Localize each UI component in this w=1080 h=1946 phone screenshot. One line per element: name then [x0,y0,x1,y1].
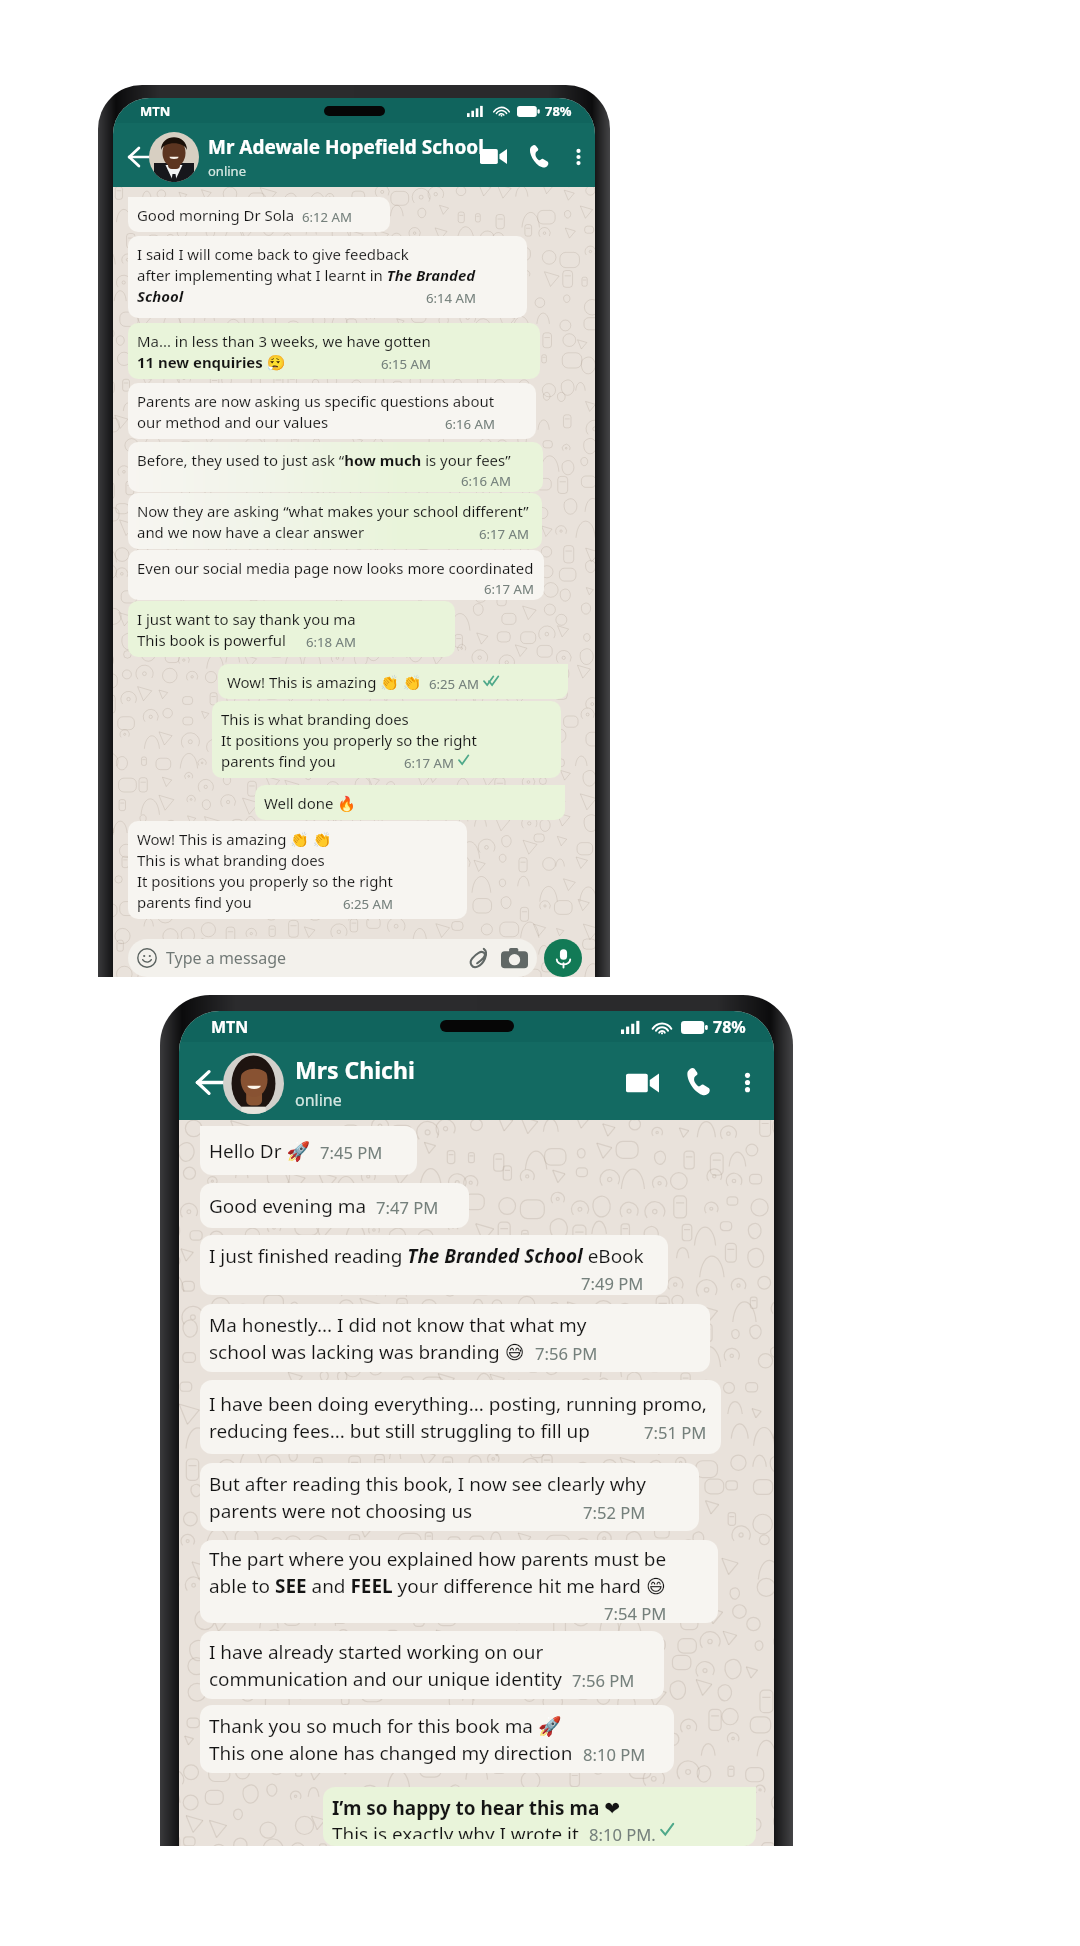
staticText: 7:56 PM [535,1342,598,1365]
staticText: 7:47 PM [376,1196,439,1219]
button[interactable]: Voice call [685,1068,713,1097]
staticText: This is what branding does [221,709,409,729]
button[interactable]: More options [572,148,585,166]
button[interactable]: Ma honestly... I did not know that what … [200,1304,710,1372]
staticText: I have already started working on our [209,1639,544,1665]
staticText: reducing fees... but still struggling to… [209,1418,590,1444]
staticText: 6:14 AM [426,289,476,307]
other: Camera [501,947,528,970]
staticText: Mr Adewale Hopefield School [208,134,484,160]
button[interactable]: Video call [480,147,507,166]
button[interactable]: I have been doing everything... posting,… [200,1380,721,1454]
staticText: communication and our unique identity [209,1666,562,1692]
staticText: It positions you properly so the right [137,871,393,891]
staticText: I said I will come back to give feedback [137,244,409,264]
staticText: parents find you [137,892,252,912]
staticText: School [137,286,184,306]
button[interactable]: Well done 🔥 [255,785,565,820]
staticText: Wow! This is amazing 👏 👏 [227,672,422,692]
staticText: school was lacking was branding 😅 [209,1339,525,1365]
staticText: and we now have a clear answer [137,522,365,542]
staticText: It positions you properly so the right [221,730,477,750]
button[interactable]: I’m so happy to hear this ma ❤️ [323,1787,756,1846]
button[interactable]: Type a message [128,939,537,977]
staticText: 7:56 PM [572,1669,635,1692]
staticText: Ma... in less than 3 weeks, we have gott… [137,331,431,351]
staticText: 78% [545,102,572,120]
staticText: This book is powerful [137,630,286,650]
staticText: 6:15 AM [381,355,431,373]
staticText: able to SEE and FEEL your difference hit… [209,1573,666,1599]
staticText: 6:17 AM [484,580,534,595]
staticText: Now they are asking “what makes your sch… [137,501,529,521]
staticText: Even our social media page now looks mor… [137,558,534,578]
staticText: 11 new enquiries 😮‍💨 [137,352,286,372]
staticText: 6:16 AM [461,472,511,487]
staticText: 7:52 PM [583,1501,646,1524]
button[interactable]: This is what branding does [212,701,561,778]
button[interactable]: Ma... in less than 3 weeks, we have gott… [128,323,540,379]
staticText: 6:12 AM [302,208,352,226]
button[interactable]: I just finished reading The Branded Scho… [200,1235,668,1295]
staticText: 7:54 PM [604,1602,667,1621]
staticText: Mrs Chichi [295,1054,415,1085]
staticText: I have been doing everything... posting,… [209,1391,707,1417]
button[interactable]: Even our social media page now looks mor… [128,550,544,600]
staticText: 6:25 AM [429,675,479,693]
staticText: Good morning Dr Sola [137,205,295,225]
staticText: 6:17 AM [479,525,529,543]
button[interactable]: Back [196,1067,227,1098]
staticText: Hello Dr 🚀 [209,1138,311,1164]
staticText: This one alone has changed my direction [209,1740,573,1766]
staticText: Type a message [166,947,287,969]
staticText: MTN [211,1016,249,1038]
button[interactable]: I just want to say thank you ma [128,601,455,657]
staticText: 6:18 AM [306,633,356,651]
staticText: Parents are now asking us specific quest… [137,391,495,411]
staticText: parents were not choosing us [209,1498,473,1524]
button[interactable]: Wow! This is amazing 👏 👏 [128,821,467,919]
staticText: But after reading this book, I now see c… [209,1471,646,1497]
staticText: after implementing what I learnt in The … [137,265,476,285]
button[interactable]: I said I will come back to give feedback [128,236,527,318]
staticText: Well done 🔥 [264,793,356,813]
staticText: 6:16 AM [445,415,495,433]
button[interactable]: But after reading this book, I now see c… [200,1463,699,1531]
button[interactable]: Voice call [528,145,551,169]
staticText: MTN [140,102,171,120]
staticText: online [208,162,246,180]
button[interactable]: Back [128,144,154,170]
button[interactable]: Thank you so much for this book ma 🚀 [200,1705,674,1773]
button[interactable]: I have already started working on our [200,1631,664,1699]
staticText: Wow! This is amazing 👏 👏 [137,829,332,849]
staticText: I just want to say thank you ma [137,609,356,629]
button[interactable]: Wow! This is amazing 👏 👏 [218,664,568,699]
staticText: our method and our values [137,412,329,432]
button[interactable]: Now they are asking “what makes your sch… [128,493,542,549]
button[interactable]: Before, they used to just ask “how much … [128,442,543,492]
staticText: 78% [713,1016,746,1038]
staticText: This is exactly why I wrote it [332,1821,579,1839]
button[interactable]: Hello Dr 🚀 [200,1126,417,1175]
staticText: This is what branding does [137,850,325,870]
other: Attach [467,946,491,970]
button[interactable]: Parents are now asking us specific quest… [128,383,536,439]
button[interactable]: Voice message [544,939,582,977]
staticText: 7:51 PM [644,1421,707,1444]
staticText: 6:25 AM [343,895,393,913]
staticText: parents find you [221,751,336,771]
staticText: Good evening ma [209,1193,367,1219]
staticText: Thank you so much for this book ma 🚀 [209,1713,562,1739]
staticText: 8:10 PM [583,1743,646,1766]
button[interactable]: Video call [626,1071,659,1095]
button[interactable]: More options [740,1072,755,1093]
staticText: online [295,1089,342,1111]
staticText: Ma honestly... I did not know that what … [209,1312,587,1338]
button[interactable]: Good evening ma [200,1183,469,1228]
button[interactable]: Good morning Dr Sola [128,197,390,232]
button[interactable]: The part where you explained how parents… [200,1540,718,1623]
staticText: Before, they used to just ask “how much … [137,450,511,470]
staticText: I just finished reading The Branded Scho… [209,1243,644,1269]
staticText: 7:49 PM [581,1272,644,1291]
staticText: I’m so happy to hear this ma ❤️ [332,1795,621,1821]
